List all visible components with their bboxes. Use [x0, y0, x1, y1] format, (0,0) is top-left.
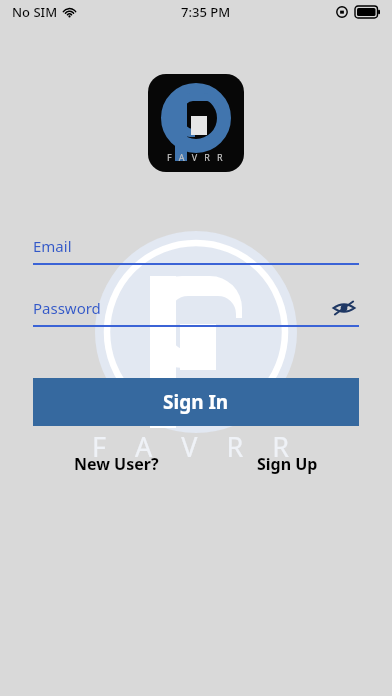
staticText: Sign Up: [257, 453, 318, 475]
button[interactable]: New User?: [74, 450, 159, 478]
button[interactable]: FAVRR logo: [148, 74, 244, 172]
staticText: 7:35 PM: [181, 3, 231, 21]
staticText: F A V R R: [0, 428, 392, 465]
staticText: New User?: [74, 453, 159, 475]
button[interactable]: Sign In: [33, 378, 359, 426]
staticText: No SIM: [12, 3, 58, 21]
staticText: F A V R R: [167, 151, 225, 163]
staticText: Email: [33, 236, 72, 256]
button[interactable]: Sign Up: [257, 450, 318, 478]
staticText: Sign In: [163, 389, 229, 415]
button[interactable]: Show password: [329, 293, 359, 322]
button[interactable]: Password: [33, 298, 359, 327]
staticText: Password: [33, 298, 101, 318]
button[interactable]: Email: [33, 236, 359, 265]
